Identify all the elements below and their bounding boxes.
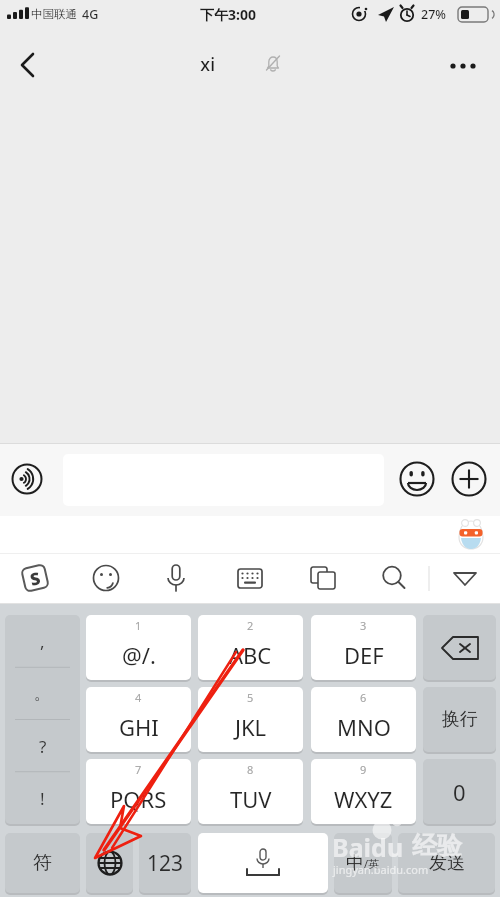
staticText: S [28,566,43,591]
button[interactable]: 5 JKL [198,687,303,752]
button[interactable]: ! [5,772,80,824]
button[interactable]: Emoticons [85,557,127,599]
button[interactable]: 8 TUV [198,759,303,824]
button[interactable]: Space [198,833,328,893]
staticText: 下午3:00 [200,5,256,24]
staticText: 27% [421,6,446,23]
staticText: PQRS [110,784,167,814]
button[interactable]: Back [6,46,50,84]
staticText: 换行 [442,708,478,731]
staticText: 1 [135,618,142,633]
staticText: TUV [230,784,272,814]
staticText: ABC [229,640,272,670]
staticText: 123 [147,849,184,878]
button[interactable]: 9 WXYZ [311,759,416,824]
staticText: @/. [122,640,156,670]
button[interactable]: 2 ABC [198,615,303,680]
staticText: , [40,630,45,653]
staticText: 4 [135,690,142,705]
staticText: 0 [453,777,466,807]
button[interactable]: 。 [5,667,80,719]
button[interactable]: xi [200,48,300,80]
button[interactable]: 123 numbers [139,833,191,893]
button[interactable]: Sticker [456,519,486,551]
staticText: 3 [360,618,367,633]
staticText: 经验 [412,830,462,861]
staticText: 9 [360,762,367,777]
staticText: ? [39,735,47,758]
staticText: 8 [247,762,254,777]
staticText: WXYZ [334,784,393,814]
button[interactable]: 3 DEF [311,615,416,680]
button[interactable]: Symbols [5,833,80,893]
button[interactable]: 0 [423,759,496,824]
button[interactable]: Switch input language [86,833,133,893]
staticText: 6 [360,690,367,705]
staticText: Baidu [332,830,404,864]
staticText: 。 [34,683,51,704]
button[interactable]: Switch Chinese English [334,833,392,893]
staticText: 符 [33,851,52,875]
staticText: 2 [247,618,254,633]
staticText: 中 [346,852,364,875]
button[interactable]: 6 MNO [311,687,416,752]
staticText: /英 [364,856,380,871]
staticText: xi [200,52,215,77]
staticText: ! [40,787,45,810]
button[interactable]: 4 GHI [86,687,191,752]
button[interactable]: ? [5,720,80,772]
button[interactable]: Voice [155,557,197,599]
button[interactable]: Translate [302,557,344,599]
button[interactable]: More options [442,46,488,84]
button[interactable]: Backspace [423,615,496,680]
button[interactable]: New line [423,687,496,752]
button[interactable]: Search [373,557,415,599]
button[interactable]: , [5,615,80,667]
button[interactable]: More functions [450,460,488,498]
button[interactable]: Send [398,833,495,893]
button[interactable]: Keyboard layout [229,557,271,599]
button[interactable]: Hide keyboard [444,557,486,599]
staticText: jingyan.baidu.com [333,862,429,877]
button[interactable]: Voice input [8,460,46,498]
staticText: DEF [344,640,384,670]
staticText: JKL [235,712,267,742]
button[interactable]: Sogou input menu [18,561,52,595]
staticText: 7 [135,762,142,777]
staticText: 4G [82,6,99,23]
button[interactable]: Emoji [398,460,436,498]
staticText: MNO [337,712,391,742]
staticText: 发送 [429,852,465,875]
button[interactable]: 7 PQRS [86,759,191,824]
staticText: 中国联通 [31,7,77,21]
staticText: 5 [247,690,254,705]
button[interactable]: 1 @/. [86,615,191,680]
staticText: GHI [119,712,159,742]
